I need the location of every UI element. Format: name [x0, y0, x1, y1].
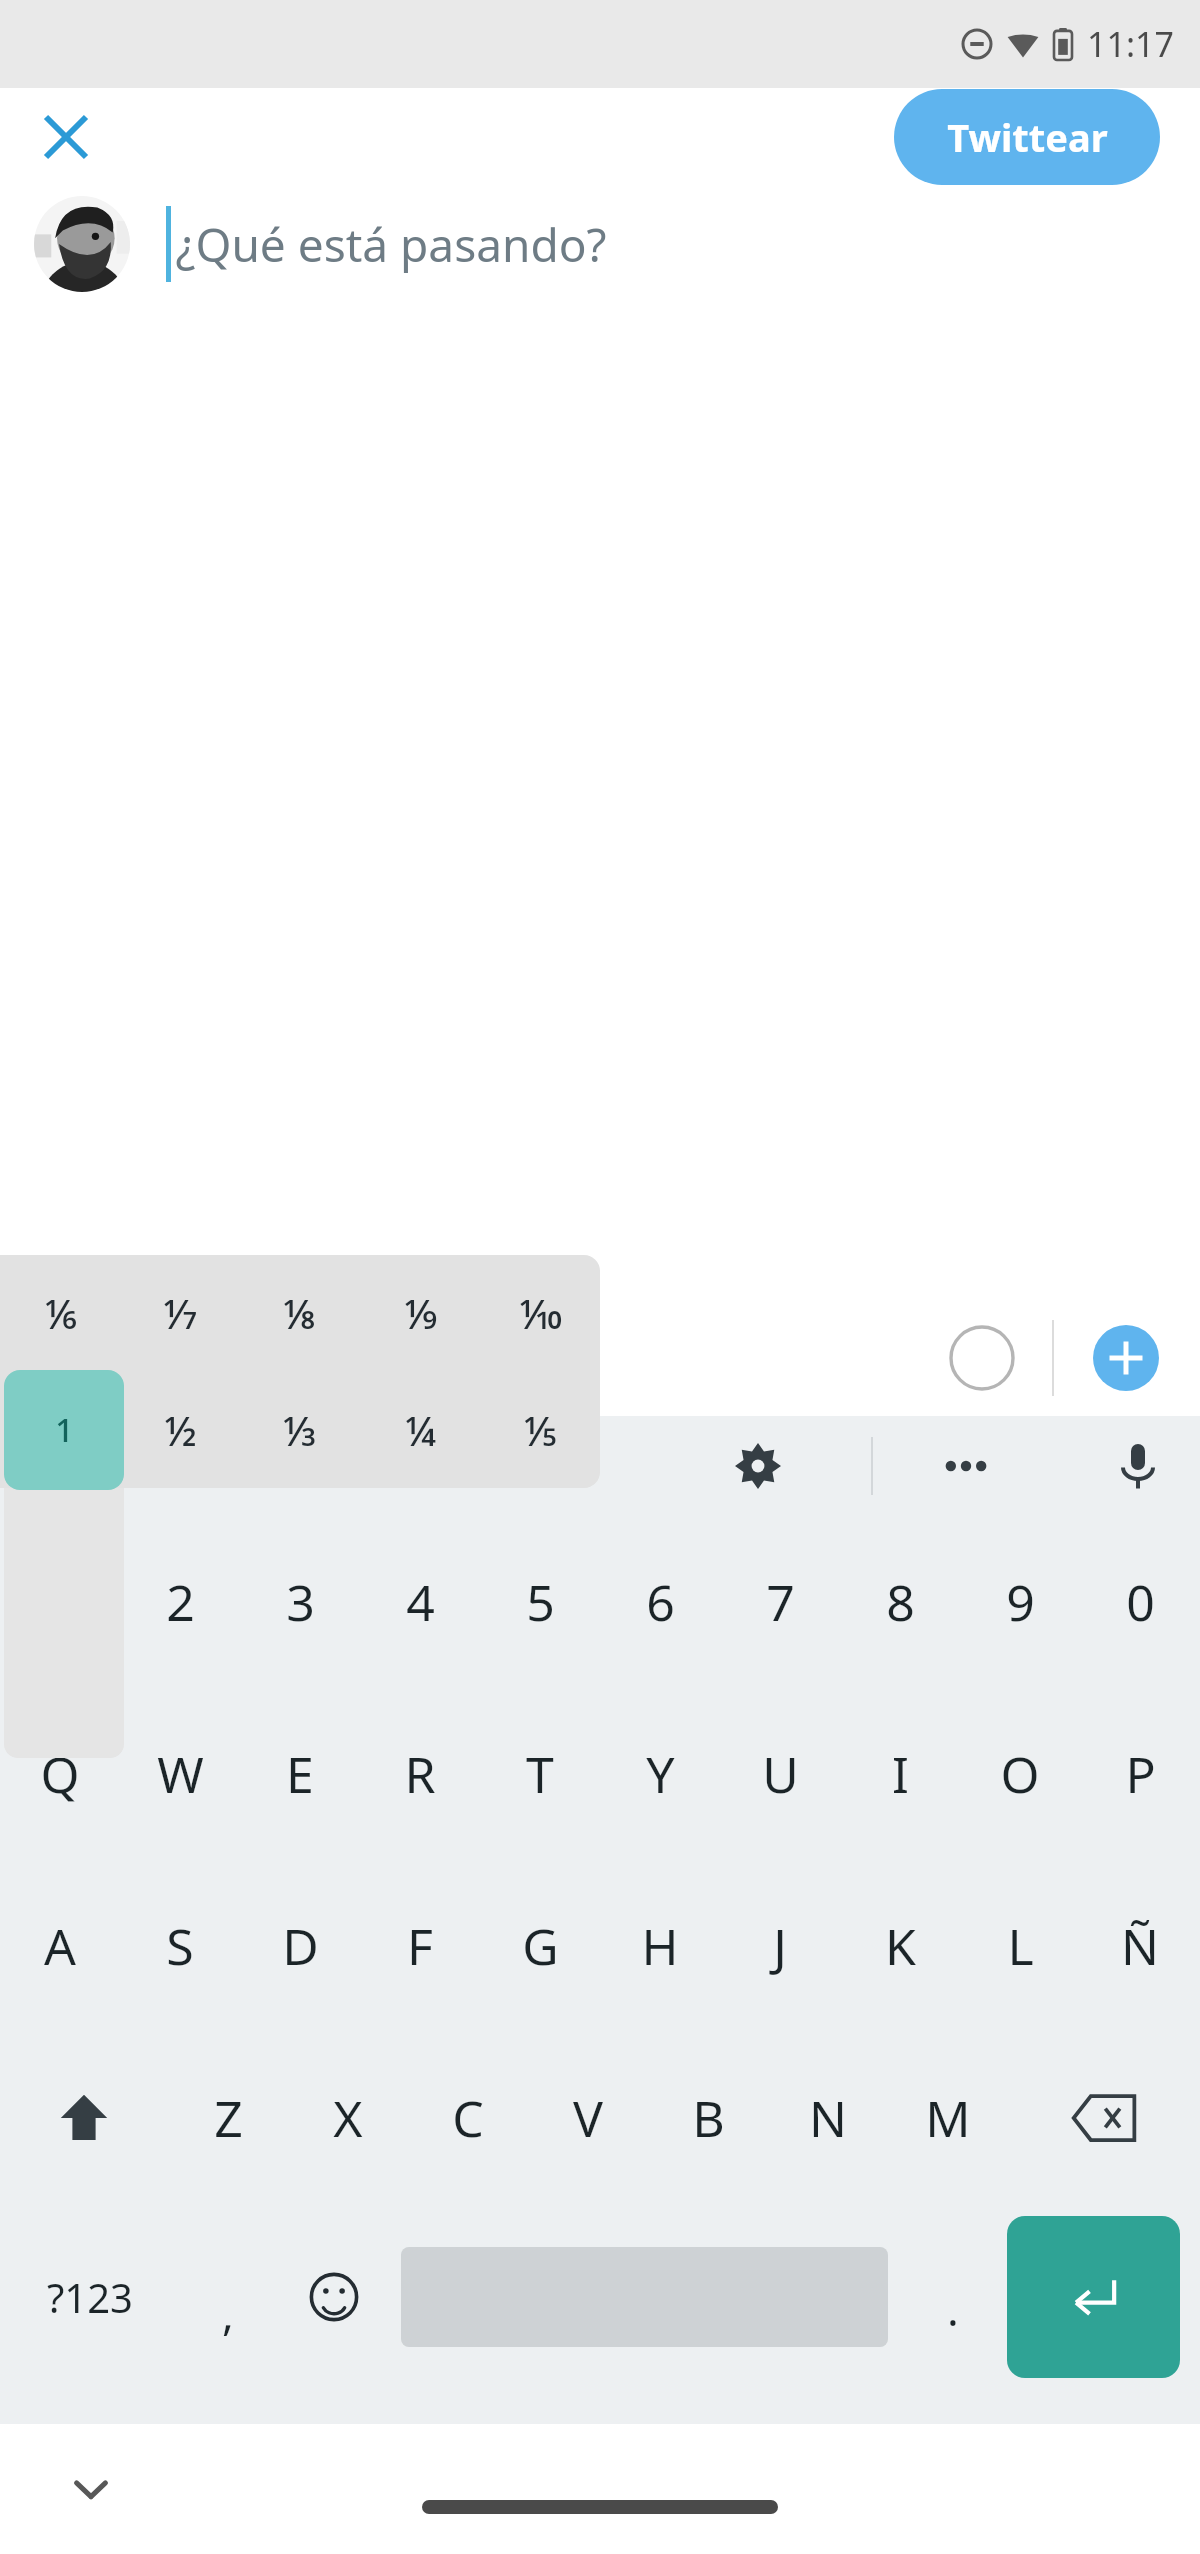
- staticText: Ñ: [1121, 1912, 1159, 1980]
- button[interactable]: ⅐: [120, 1255, 240, 1371]
- staticText: ⅑: [404, 1286, 437, 1340]
- staticText: M: [925, 2084, 971, 2152]
- button[interactable]: ⅓: [240, 1371, 360, 1488]
- staticText: 5: [526, 1568, 555, 1636]
- staticText: N: [809, 2084, 847, 2152]
- button[interactable]: 0: [1080, 1516, 1200, 1688]
- staticText: ⅕: [523, 1403, 557, 1457]
- button[interactable]: Z: [168, 2032, 288, 2204]
- button[interactable]: 5: [480, 1516, 600, 1688]
- button[interactable]: M: [888, 2032, 1008, 2204]
- staticText: A: [44, 1912, 76, 1980]
- staticText: ⅒: [519, 1286, 562, 1340]
- staticText: B: [692, 2084, 725, 2152]
- button[interactable]: 8: [840, 1516, 960, 1688]
- button[interactable]: Cerrar: [30, 101, 102, 173]
- staticText: ⅓: [283, 1403, 317, 1457]
- staticText: F: [407, 1912, 433, 1980]
- staticText: L: [1007, 1912, 1034, 1980]
- button[interactable]: Intro: [1007, 2216, 1180, 2378]
- staticText: I: [892, 1740, 909, 1808]
- button[interactable]: N: [768, 2032, 888, 2204]
- button[interactable]: 6: [600, 1516, 720, 1688]
- button[interactable]: Y: [600, 1688, 720, 1860]
- button[interactable]: S: [120, 1860, 240, 2032]
- staticText: 8: [886, 1568, 915, 1636]
- button[interactable]: Q: [0, 1688, 120, 1860]
- staticText: 2: [166, 1568, 195, 1636]
- button[interactable]: Espacio: [401, 2204, 888, 2390]
- staticText: O: [1000, 1740, 1040, 1808]
- button[interactable]: ⅛: [240, 1255, 360, 1371]
- button[interactable]: C: [408, 2032, 528, 2204]
- staticText: W: [157, 1740, 204, 1808]
- button[interactable]: Dictado por voz: [1102, 1430, 1174, 1502]
- staticText: J: [773, 1912, 787, 1980]
- staticText: X: [333, 2084, 363, 2152]
- button[interactable]: ¼: [360, 1371, 480, 1488]
- button[interactable]: ½: [120, 1371, 240, 1488]
- button[interactable]: P: [1080, 1688, 1200, 1860]
- button[interactable]: .: [898, 2204, 1007, 2390]
- button[interactable]: W: [120, 1688, 240, 1860]
- button[interactable]: Ajustes: [722, 1430, 794, 1502]
- button[interactable]: X: [288, 2032, 408, 2204]
- staticText: V: [573, 2084, 603, 2152]
- staticText: Y: [646, 1740, 675, 1808]
- button[interactable]: ⅑: [360, 1255, 480, 1371]
- button[interactable]: Añadir tweet: [1078, 1310, 1174, 1406]
- button[interactable]: ⅕: [480, 1371, 600, 1488]
- staticText: 4: [406, 1568, 435, 1636]
- button[interactable]: B: [648, 2032, 768, 2204]
- button[interactable]: 2: [120, 1516, 240, 1688]
- staticText: ½: [164, 1403, 197, 1457]
- button[interactable]: Más opciones: [930, 1430, 1002, 1502]
- button[interactable]: 1: [4, 1370, 124, 1490]
- button[interactable]: Ñ: [1080, 1860, 1200, 2032]
- staticText: D: [282, 1912, 319, 1980]
- button[interactable]: ?123: [0, 2204, 180, 2390]
- staticText: .: [947, 2279, 959, 2339]
- staticText: ¿Qué está pasando?: [175, 213, 607, 276]
- button[interactable]: 4: [360, 1516, 480, 1688]
- staticText: U: [762, 1740, 799, 1808]
- button[interactable]: G: [480, 1860, 600, 2032]
- button[interactable]: ,: [180, 2204, 276, 2390]
- button[interactable]: ⅒: [480, 1255, 600, 1371]
- staticText: S: [166, 1912, 194, 1980]
- button[interactable]: ⅙: [0, 1255, 120, 1371]
- button[interactable]: Mayúsculas: [0, 2032, 168, 2204]
- staticText: ⅐: [163, 1286, 197, 1340]
- button[interactable]: O: [960, 1688, 1080, 1860]
- button[interactable]: U: [720, 1688, 840, 1860]
- button[interactable]: H: [600, 1860, 720, 2032]
- button[interactable]: Contador de caracteres: [934, 1310, 1030, 1406]
- staticText: Z: [214, 2084, 243, 2152]
- button[interactable]: V: [528, 2032, 648, 2204]
- staticText: 0: [1126, 1568, 1155, 1636]
- button[interactable]: F: [360, 1860, 480, 2032]
- button[interactable]: T: [480, 1688, 600, 1860]
- button[interactable]: L: [960, 1860, 1080, 2032]
- button[interactable]: E: [240, 1688, 360, 1860]
- button[interactable]: Emoji: [276, 2204, 391, 2390]
- button[interactable]: D: [240, 1860, 360, 2032]
- button[interactable]: 3: [240, 1516, 360, 1688]
- button[interactable]: K: [840, 1860, 960, 2032]
- staticText: H: [641, 1912, 679, 1980]
- button[interactable]: R: [360, 1688, 480, 1860]
- staticText: ,: [222, 2283, 234, 2343]
- button[interactable]: Ocultar teclado: [56, 2454, 126, 2524]
- button[interactable]: 9: [960, 1516, 1080, 1688]
- button[interactable]: I: [840, 1688, 960, 1860]
- button[interactable]: Twittear: [894, 89, 1160, 185]
- staticText: 9: [1006, 1568, 1035, 1636]
- button[interactable]: Borrar: [1008, 2032, 1200, 2204]
- button[interactable]: A: [0, 1860, 120, 2032]
- button[interactable]: 7: [720, 1516, 840, 1688]
- button[interactable]: J: [720, 1860, 840, 2032]
- button[interactable]: [34, 196, 130, 292]
- staticText: Q: [40, 1740, 80, 1808]
